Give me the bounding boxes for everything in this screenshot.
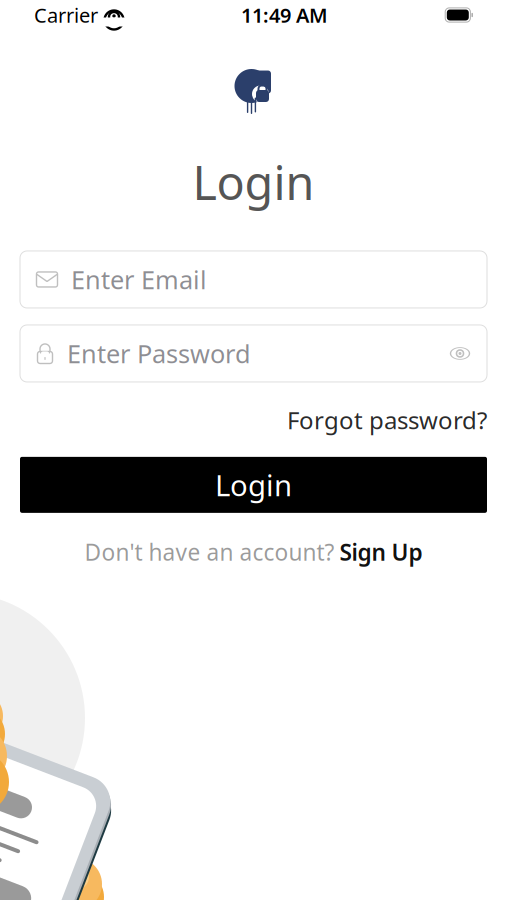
staticText: Login <box>192 151 314 213</box>
staticText: Enter Password <box>67 337 251 370</box>
button[interactable]: Don't have an account? <box>20 537 487 567</box>
button[interactable]: Enter Email <box>20 251 487 308</box>
staticText: Forgot password? <box>287 404 487 436</box>
staticText: 11:49 AM <box>241 2 328 28</box>
staticText: Carrier <box>34 2 98 28</box>
staticText: Login <box>215 465 292 504</box>
staticText: Enter Email <box>71 263 207 296</box>
button[interactable]: Forgot password? <box>287 404 487 436</box>
button[interactable]: Enter Password <box>20 325 487 382</box>
staticText: Sign Up <box>339 537 422 567</box>
staticText: Don't have an account? <box>84 537 334 567</box>
button[interactable]: Login <box>20 457 487 513</box>
